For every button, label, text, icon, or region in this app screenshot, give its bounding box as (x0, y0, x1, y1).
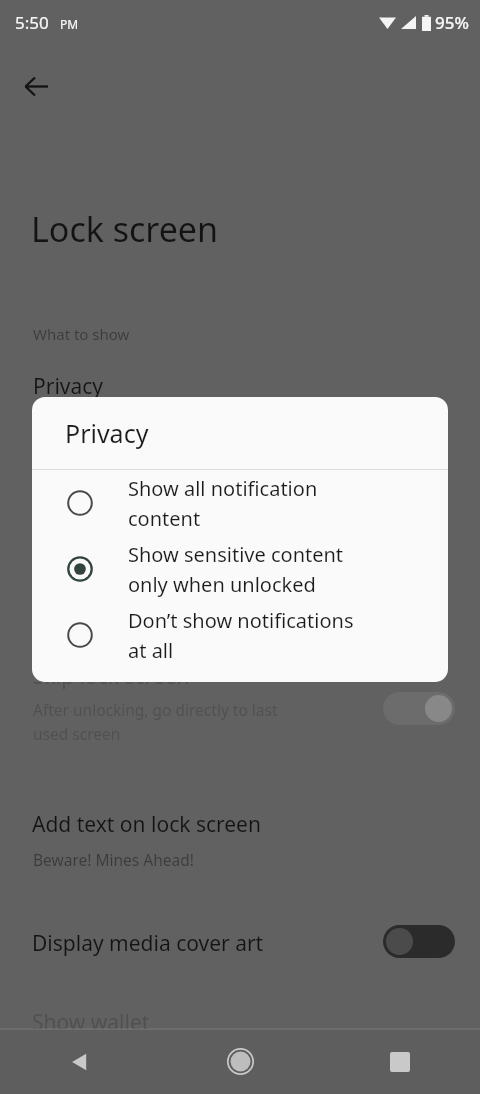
button[interactable]: Show all notification content (32, 470, 448, 536)
staticText: Privacy (65, 416, 149, 450)
button[interactable]: Back (0, 1029, 160, 1094)
staticText: Lock screen (31, 206, 219, 252)
staticText: Beware! Mines Ahead! (33, 849, 194, 870)
button[interactable]: Skip lock screen toggle (383, 692, 455, 725)
button[interactable]: Back (12, 62, 60, 110)
button[interactable]: Recent apps (320, 1029, 480, 1094)
staticText: 5:50 (15, 11, 49, 34)
staticText: Add text on lock screen (32, 810, 261, 839)
staticText: Skip lock screen (33, 662, 190, 691)
staticText: After unlocking, go directly to last use… (33, 699, 278, 744)
staticText: Show all notification content (128, 475, 318, 532)
staticText: What to show (33, 324, 130, 344)
staticText: Show sensitive content only when unlocke… (128, 541, 344, 598)
staticText: Show wallet (32, 1008, 150, 1037)
button[interactable]: Show sensitive content only when unlocke… (32, 536, 448, 602)
staticText: Don’t show notifications at all (128, 607, 354, 664)
staticText: 95% (435, 11, 469, 34)
staticText: PM (60, 16, 79, 32)
button[interactable]: Don’t show notifications at all (32, 602, 448, 668)
button[interactable]: Display media cover art toggle (383, 925, 455, 958)
staticText: Display media cover art (32, 929, 264, 958)
staticText: Privacy (33, 372, 104, 401)
button[interactable]: Home (160, 1029, 320, 1094)
